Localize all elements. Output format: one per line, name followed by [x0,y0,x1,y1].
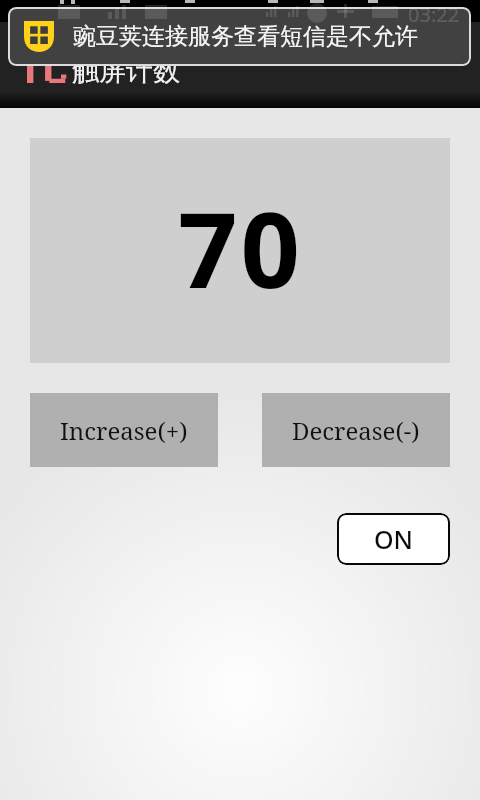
button[interactable]: ON [337,513,450,565]
staticText: 触屏计数 [72,54,180,88]
button[interactable]: Decrease(-) [262,393,450,467]
staticText: 03:22 [408,1,460,28]
staticText: Increase(+) [60,414,188,447]
button[interactable]: Wandoujia [8,7,471,66]
other: Wandoujia [24,21,54,52]
button[interactable]: Increase(+) [30,393,218,467]
staticText: ON [374,522,414,556]
staticText: 豌豆荚连接服务查看短信是不允许 [73,22,418,51]
staticText: 70 [178,177,303,319]
staticText: Decrease(-) [292,414,420,447]
other: App icon [27,66,65,83]
